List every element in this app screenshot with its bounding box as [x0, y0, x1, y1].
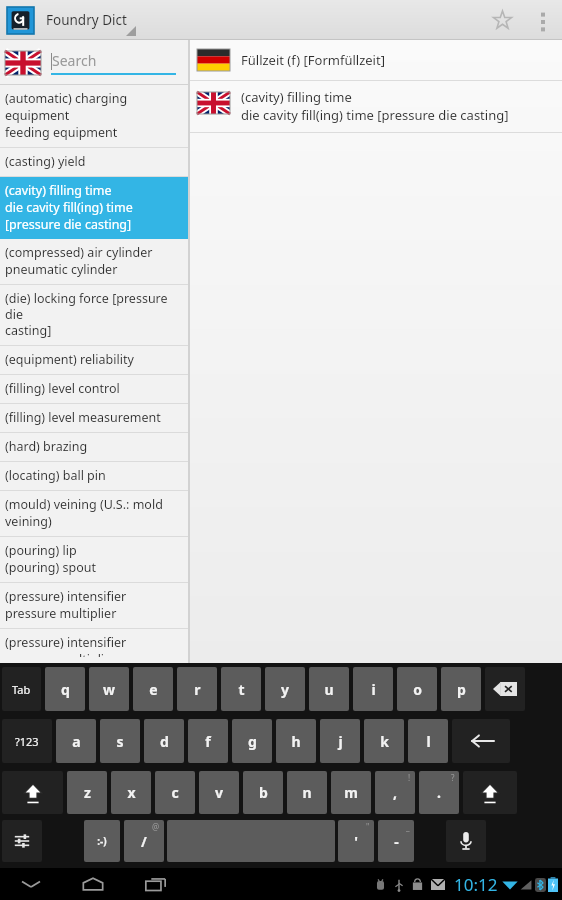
button[interactable]: Tab [2, 667, 41, 711]
staticText: r [194, 680, 201, 699]
button[interactable]: Home [62, 868, 124, 900]
button[interactable]: (die) locking force [pressure die [0, 285, 188, 345]
button[interactable]: (filling) level measurement [0, 404, 188, 432]
button[interactable]: Input settings [2, 820, 42, 862]
staticText: casting] [5, 322, 52, 339]
button[interactable]: Enter [452, 719, 510, 763]
button[interactable]: (cavity) filling time [190, 81, 562, 132]
button[interactable]: Shift [2, 771, 63, 814]
button[interactable]: . [419, 771, 459, 814]
button[interactable]: / [124, 820, 164, 862]
button[interactable]: x [111, 771, 151, 814]
staticText: (locating) ball pin [5, 467, 106, 484]
button[interactable]: c [155, 771, 195, 814]
staticText: die cavity fill(ing) time [5, 199, 133, 216]
staticText: d [160, 732, 169, 751]
button[interactable]: Backspace [485, 667, 525, 711]
staticText: b [259, 783, 268, 802]
button[interactable]: Favorite [480, 0, 524, 40]
button[interactable]: k [364, 719, 404, 763]
button[interactable]: (equipment) reliability [0, 346, 188, 374]
staticText: (cavity) filling time [241, 88, 352, 106]
button[interactable]: s [100, 719, 140, 763]
button[interactable]: (mould) veining (U.S.: mold [0, 491, 188, 536]
button[interactable]: n [287, 771, 327, 814]
staticText: , [393, 783, 397, 802]
staticText: (pressure) intensifier [5, 588, 127, 605]
button[interactable]: y [265, 667, 305, 711]
button[interactable]: (automatic) charging [0, 85, 188, 147]
button[interactable]: (compressed) air cylinder [0, 239, 188, 284]
staticText: m [344, 783, 358, 802]
staticText: (die) locking force [pressure die [5, 290, 184, 322]
button[interactable]: g [232, 719, 272, 763]
staticText: (cavity) filling time [5, 182, 112, 199]
button[interactable]: :-) [84, 820, 120, 862]
staticText: 10:12 [454, 873, 498, 896]
button[interactable]: (hard) brazing [0, 433, 188, 461]
staticText: ' [354, 832, 358, 851]
staticText: equipment [5, 107, 70, 124]
button[interactable]: (casting) yield [0, 148, 188, 176]
button[interactable]: p [441, 667, 481, 711]
button[interactable]: (pressure) intensifier [0, 583, 188, 628]
staticText: q [61, 680, 70, 699]
staticText: v [215, 783, 223, 802]
button[interactable]: v [199, 771, 239, 814]
button[interactable]: Shift [463, 771, 517, 814]
button[interactable]: Füllzeit (f) [Formfüllzeit] [190, 40, 562, 80]
staticText: l [426, 732, 431, 751]
staticText: :-) [97, 834, 107, 848]
button[interactable]: ' [338, 820, 374, 862]
button[interactable]: j [320, 719, 360, 763]
staticText: (automatic) charging [5, 90, 128, 107]
button[interactable]: More options [524, 0, 562, 40]
staticText: ! [408, 772, 411, 783]
staticText: (equipment) reliability [5, 351, 134, 368]
staticText: y [281, 680, 289, 699]
button[interactable]: q [45, 667, 85, 711]
button[interactable]: m [331, 771, 371, 814]
button[interactable]: o [397, 667, 437, 711]
button[interactable]: (pressure) intensifier [0, 629, 188, 663]
button[interactable]: i [353, 667, 393, 711]
button[interactable]: b [243, 771, 283, 814]
staticText: (pressure) intensifier [5, 634, 127, 651]
staticText: veining) [5, 513, 52, 530]
button[interactable]: r [177, 667, 217, 711]
button[interactable]: d [144, 719, 184, 763]
button[interactable]: Source language English [5, 51, 41, 75]
button[interactable]: (filling) level control [0, 375, 188, 403]
button[interactable]: , [375, 771, 415, 814]
button[interactable]: w [89, 667, 129, 711]
staticText: o [413, 680, 422, 699]
staticText: ? [451, 772, 455, 783]
button[interactable]: Back [0, 868, 62, 900]
staticText: (compressed) air cylinder [5, 244, 153, 261]
button[interactable]: (pouring) lip [0, 537, 188, 582]
button[interactable]: (cavity) filling time [0, 177, 188, 239]
button[interactable]: a [56, 719, 96, 763]
button[interactable]: e [133, 667, 173, 711]
button[interactable]: z [67, 771, 107, 814]
button[interactable]: t [221, 667, 261, 711]
staticText: feeding equipment [5, 124, 118, 141]
staticText: f [205, 732, 211, 751]
button[interactable]: u [309, 667, 349, 711]
button[interactable]: (locating) ball pin [0, 462, 188, 490]
button[interactable]: f [188, 719, 228, 763]
button[interactable]: Search [51, 51, 176, 75]
staticText: k [380, 732, 389, 751]
button[interactable]: Foundry Dict [0, 0, 133, 40]
button[interactable]: Voice input [446, 820, 486, 862]
staticText: z [84, 783, 91, 802]
staticText: [pressure die casting] [5, 216, 132, 233]
staticText: h [291, 732, 301, 751]
button[interactable]: l [408, 719, 448, 763]
button[interactable]: - [378, 820, 414, 862]
button[interactable]: Recent apps [124, 868, 186, 900]
staticText: Search [52, 51, 97, 70]
button[interactable]: h [276, 719, 316, 763]
button[interactable]: ?123 [2, 719, 52, 763]
